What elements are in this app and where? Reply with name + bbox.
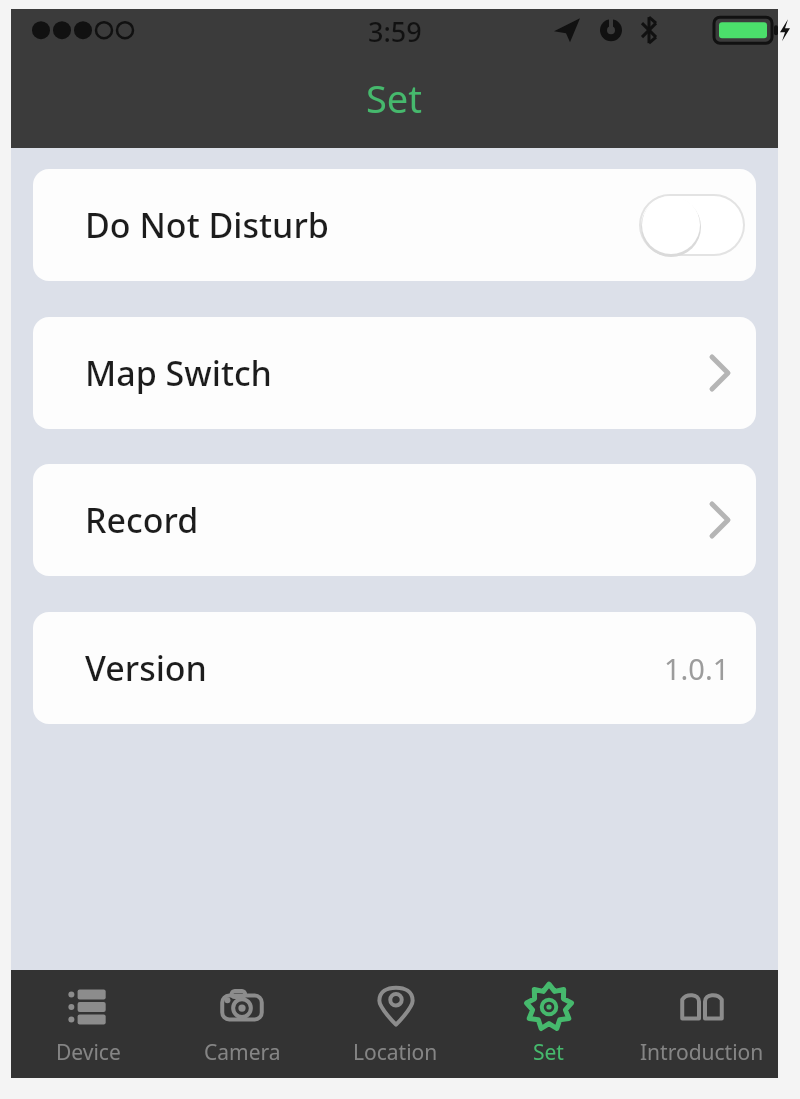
staticText: Introduction (640, 1038, 764, 1067)
staticText: Device (56, 1038, 121, 1067)
staticText: Version (85, 645, 207, 691)
button[interactable]: Camera (165, 970, 319, 1078)
staticText: 1.0.1 (664, 649, 730, 688)
button[interactable]: Record (33, 464, 756, 576)
button[interactable]: Open (694, 347, 746, 399)
button[interactable]: Device (11, 970, 165, 1078)
button[interactable]: Do Not Disturb (33, 169, 756, 281)
button[interactable]: Location (319, 970, 472, 1078)
staticText: Do Not Disturb (85, 202, 329, 248)
staticText: Map Switch (85, 350, 272, 396)
staticText: Set (533, 1038, 564, 1067)
button[interactable]: Map Switch (33, 317, 756, 429)
button[interactable]: Open (694, 494, 746, 546)
button[interactable]: Version (33, 612, 756, 724)
staticText: Set (366, 72, 423, 124)
staticText: Camera (204, 1038, 281, 1067)
staticText: 3:59 (368, 13, 422, 50)
button[interactable]: Do Not Disturb toggle (638, 193, 746, 257)
staticText: Record (85, 497, 199, 543)
button[interactable]: Set (472, 970, 625, 1078)
button[interactable]: Introduction (625, 970, 778, 1078)
staticText: Location (353, 1038, 438, 1067)
